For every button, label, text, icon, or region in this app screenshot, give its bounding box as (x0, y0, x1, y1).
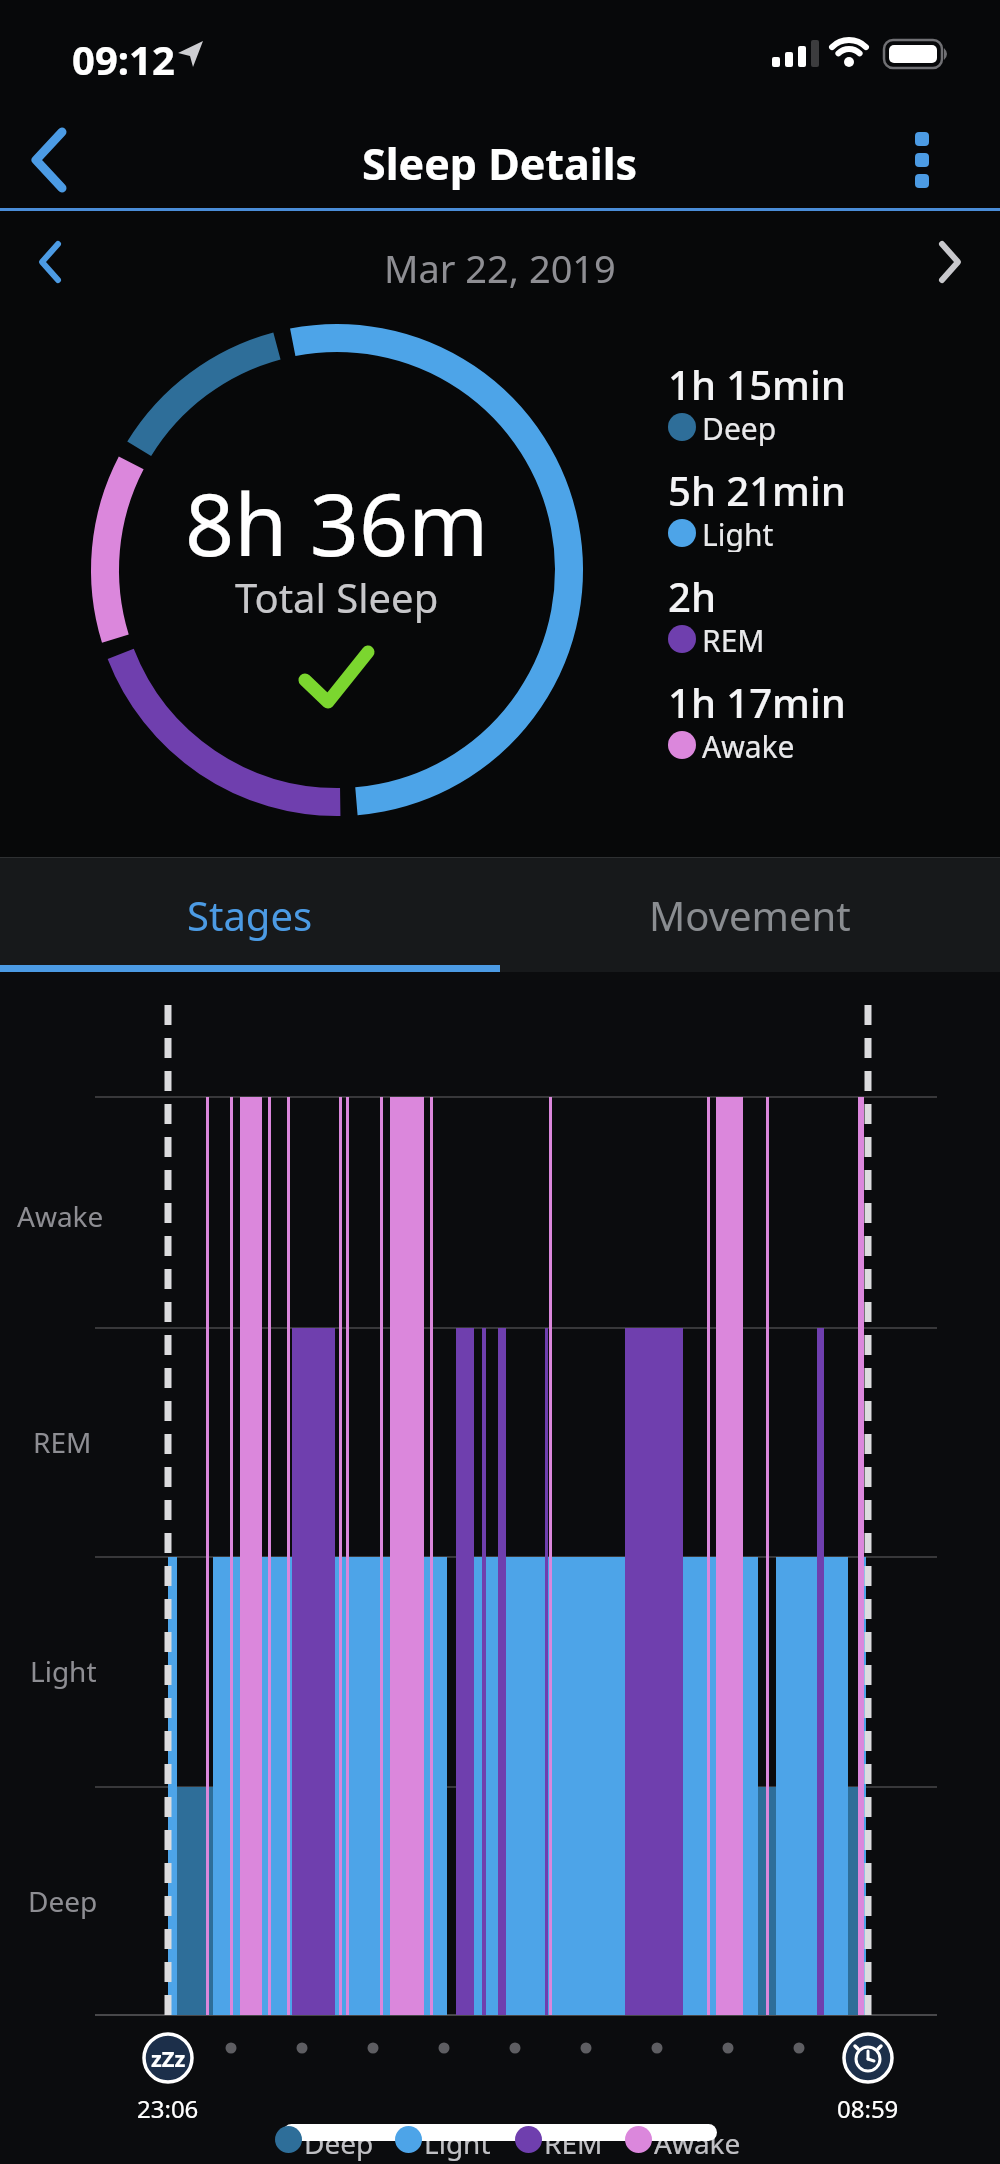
staticText: Awake (654, 2124, 741, 2162)
staticText: 2h (668, 569, 716, 623)
staticText: Light (702, 514, 774, 552)
staticText: zZz (151, 2043, 186, 2073)
button[interactable] (895, 120, 950, 205)
staticText: 08:59 (837, 2092, 899, 2125)
staticText: Deep (702, 408, 777, 446)
staticText: 09:12 (72, 32, 175, 86)
staticText: 23:06 (137, 2092, 199, 2125)
staticText: Light (30, 1652, 97, 1690)
staticText: REM (544, 2124, 603, 2162)
staticText: Awake (17, 1197, 104, 1235)
button[interactable] (838, 2034, 898, 2082)
staticText: Deep (28, 1882, 98, 1920)
button[interactable] (920, 228, 980, 296)
button[interactable]: Movement (500, 858, 1000, 972)
staticText: Stages (187, 888, 313, 942)
staticText: REM (702, 620, 765, 658)
staticText: Mar 22, 2019 (384, 242, 616, 294)
button[interactable]: Stages (0, 858, 500, 972)
staticText: Light (424, 2124, 491, 2162)
button[interactable] (14, 118, 94, 203)
staticText: Sleep Details (362, 134, 638, 193)
staticText: 1h 17min (668, 675, 846, 729)
button[interactable] (20, 228, 80, 296)
staticText: 1h 15min (668, 357, 846, 411)
staticText: 5h 21min (668, 463, 846, 517)
staticText: Total Sleep (235, 570, 439, 624)
staticText: Deep (304, 2124, 374, 2162)
button[interactable]: zZz (138, 2034, 198, 2082)
staticText: Movement (649, 888, 851, 942)
staticText: 8h 36m (185, 464, 489, 581)
staticText: REM (33, 1423, 92, 1461)
staticText: Awake (702, 726, 795, 764)
